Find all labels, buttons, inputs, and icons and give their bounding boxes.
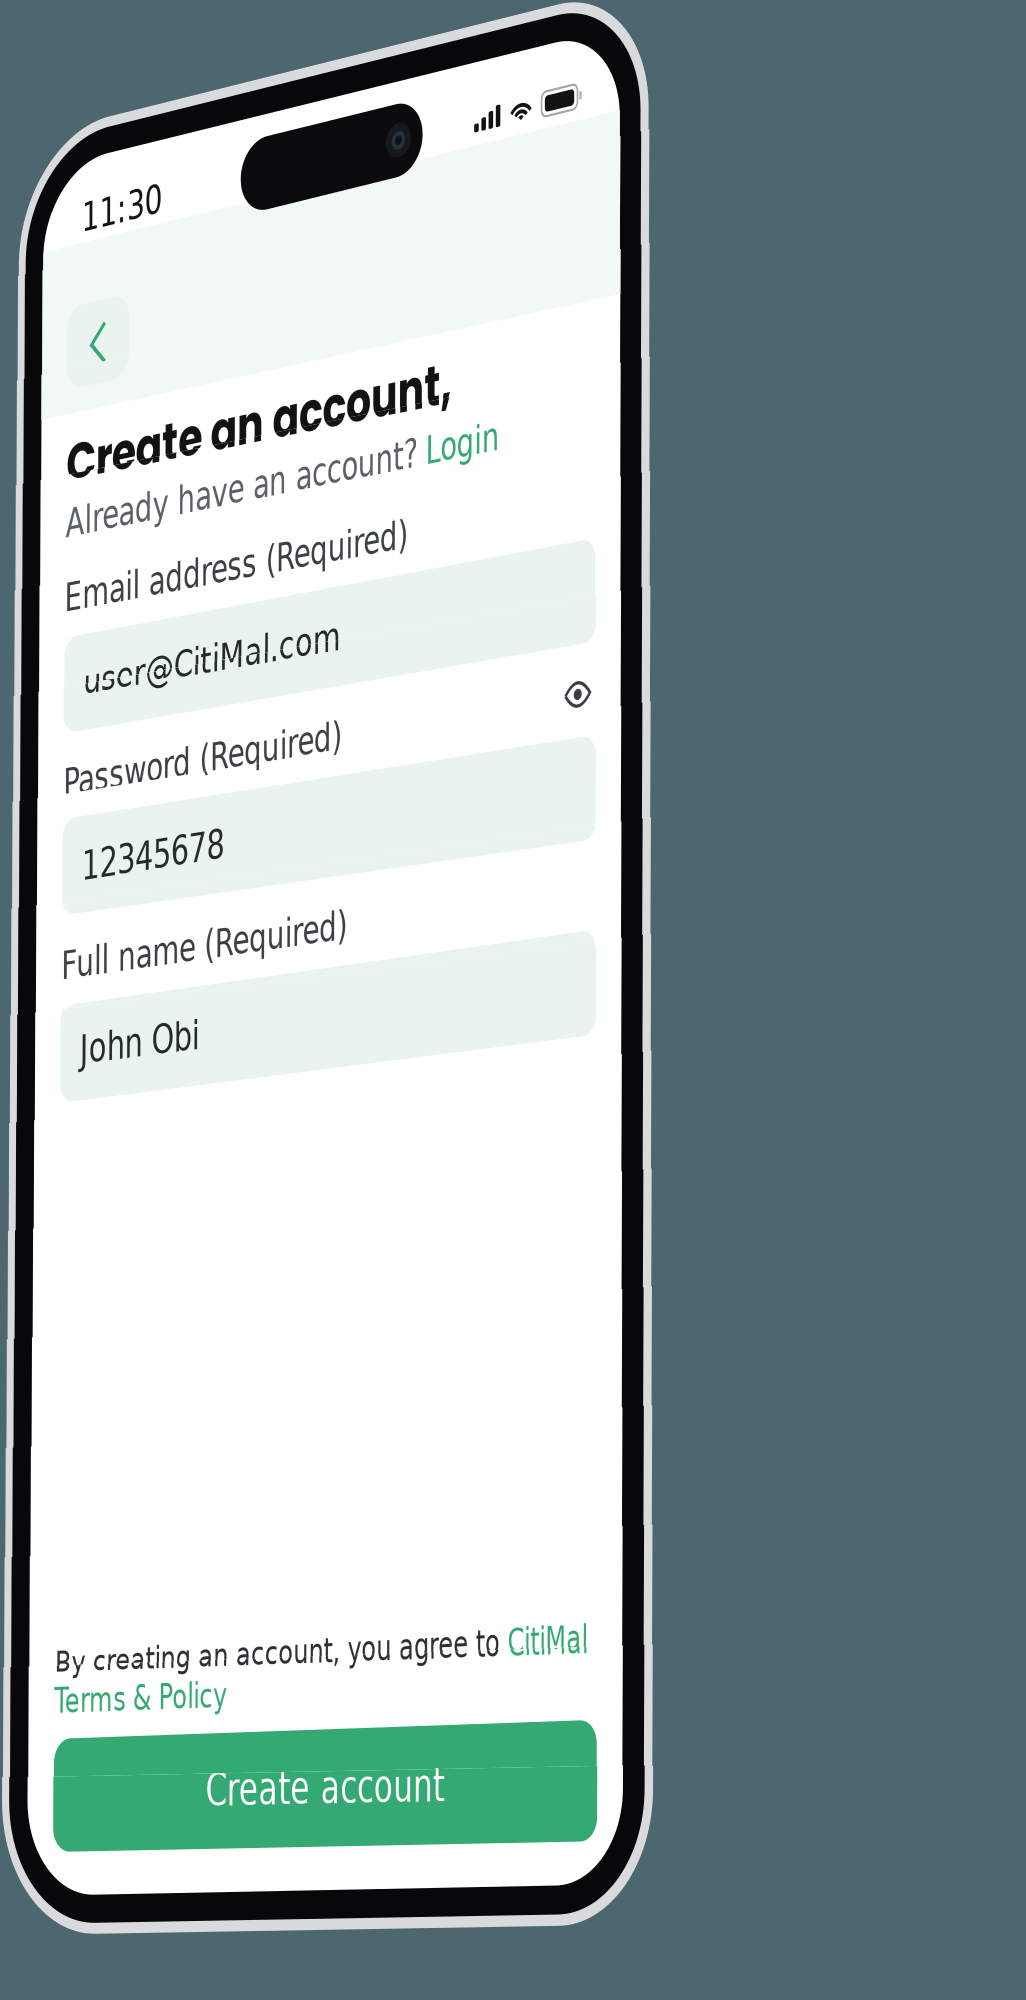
button[interactable]: 12345678 — [17, 225, 376, 273]
button[interactable]: CitiMal — [317, 574, 370, 592]
button[interactable]: Terms & Policy — [17, 646, 131, 665]
button[interactable]: Create account — [17, 513, 376, 567]
staticText: Terms & Policy — [17, 114, 131, 132]
button[interactable]: user@CitiMal.com — [17, 187, 376, 235]
button[interactable]: Terms & Policy — [17, 114, 131, 132]
staticText: By creating an account, you agree to — [17, 201, 317, 220]
button[interactable]: Terms & Policy — [17, 167, 131, 185]
staticText: Email address (Required) — [17, 157, 249, 179]
button[interactable]: user@CitiMal.com — [17, 134, 376, 182]
staticText: Create account — [117, 155, 275, 179]
button[interactable]: John Obi — [17, 156, 376, 204]
button[interactable]: Create account — [17, 194, 376, 248]
button[interactable]: Create account — [17, 778, 376, 832]
button[interactable]: Create account — [17, 247, 376, 301]
button[interactable]: Show password — [352, 34, 376, 58]
button[interactable]: 12345678 — [17, 330, 376, 378]
button[interactable]: CitiMal — [317, 41, 370, 60]
button[interactable]: John Obi — [17, 421, 376, 469]
button[interactable]: 12345678 — [17, 172, 376, 220]
button[interactable]: John Obi — [17, 103, 376, 151]
staticText: Terms & Policy — [17, 593, 131, 611]
button[interactable]: 12345678 — [17, 65, 376, 113]
button[interactable]: Terms & Policy — [17, 486, 131, 505]
button[interactable]: Create account — [17, 620, 376, 674]
staticText: John Obi — [30, 275, 110, 298]
staticText: CitiMal — [317, 521, 370, 539]
staticText: user@CitiMal.com — [30, 252, 204, 274]
button[interactable]: CitiMal — [317, 414, 370, 433]
button[interactable]: user@CitiMal.com — [17, 27, 376, 75]
button[interactable]: Login — [261, 119, 311, 141]
button[interactable]: Terms & Policy — [17, 220, 131, 239]
button[interactable]: Show password — [352, 87, 376, 111]
button[interactable]: Create account — [17, 34, 376, 88]
staticText: Create account — [117, 475, 275, 499]
button[interactable]: Terms & Policy — [17, 380, 131, 398]
button[interactable]: CitiMal — [317, 95, 370, 113]
button[interactable]: John Obi — [17, 50, 376, 98]
button[interactable]: Create account — [17, 460, 376, 514]
button[interactable]: Create account — [17, 140, 376, 194]
button[interactable]: Create account — [17, 566, 376, 620]
button[interactable]: Terms & Policy — [17, 327, 131, 345]
button[interactable]: user@CitiMal.com — [17, 239, 376, 287]
button[interactable]: Create account — [17, 673, 376, 727]
button[interactable]: Terms & Policy — [17, 433, 131, 452]
button[interactable]: CitiMal — [317, 521, 370, 539]
button[interactable]: 12345678 — [17, 12, 376, 60]
button[interactable]: Terms & Policy — [17, 751, 131, 770]
button[interactable]: Create account — [17, 300, 376, 354]
button[interactable]: Login — [261, 66, 311, 88]
button[interactable]: John Obi — [17, 369, 376, 417]
button[interactable]: 12345678 — [17, 278, 376, 326]
staticText: Create account — [117, 368, 275, 392]
button[interactable]: user@CitiMal.com — [17, 81, 376, 129]
button[interactable]: Terms & Policy — [17, 593, 131, 611]
button[interactable]: 12345678 — [17, 118, 376, 166]
staticText: John Obi — [30, 382, 110, 404]
button[interactable]: Terms & Policy — [17, 540, 131, 558]
button[interactable]: John Obi — [17, 263, 376, 311]
button[interactable]: Create account — [17, 353, 376, 407]
staticText: 12345678 — [30, 184, 126, 207]
button[interactable]: Create account — [17, 726, 376, 780]
button[interactable]: Terms & Policy — [17, 273, 131, 292]
button[interactable]: CitiMal — [317, 680, 370, 699]
button[interactable]: CitiMal — [317, 467, 370, 486]
button[interactable]: John Obi — [17, 209, 376, 257]
button[interactable]: Terms & Policy — [17, 699, 131, 718]
button[interactable]: CitiMal — [317, 627, 370, 646]
button[interactable]: CitiMal — [317, 732, 370, 751]
staticText: John Obi — [30, 329, 110, 351]
button[interactable]: Create account — [17, 87, 376, 141]
button[interactable]: Create account — [17, 407, 376, 461]
button[interactable]: John Obi — [17, 316, 376, 364]
